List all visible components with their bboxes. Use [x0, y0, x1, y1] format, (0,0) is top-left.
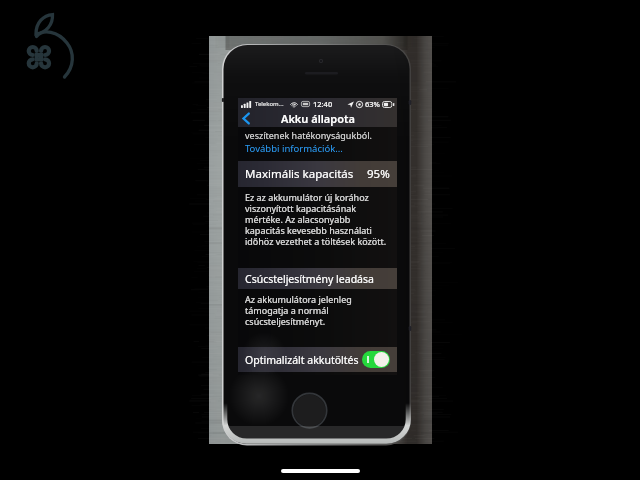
- button[interactable]: Csúcsteljesítmény leadása: [245, 268, 390, 289]
- staticText: Maximális kapacitás: [245, 166, 354, 182]
- staticText: 95%: [367, 166, 390, 182]
- staticText: 63%: [365, 99, 380, 109]
- staticText: Akku állapota: [281, 111, 355, 126]
- button[interactable]: Back: [238, 110, 254, 127]
- button[interactable]: Optimized battery charging, on: [362, 351, 390, 368]
- staticText: Telekom...: [255, 100, 284, 108]
- button[interactable]: Photo of iPhone battery health screen: [209, 36, 432, 444]
- staticText: Az akkumulátora jelenleg támogatja a nor…: [245, 293, 390, 327]
- button[interactable]: App logo: [26, 10, 76, 80]
- button[interactable]: Optimalizált akkutöltés: [245, 347, 390, 372]
- staticText: Csúcsteljesítmény leadása: [245, 272, 374, 286]
- staticText: Optimalizált akkutöltés: [245, 353, 359, 367]
- staticText: Ez az akkumulátor új korához viszonyítot…: [245, 191, 390, 247]
- button[interactable]: További információk...: [245, 142, 343, 155]
- staticText: 12:40: [313, 99, 333, 109]
- staticText: veszítenek hatékonyságukból.: [245, 129, 372, 141]
- button[interactable]: Maximális kapacitás: [245, 161, 390, 187]
